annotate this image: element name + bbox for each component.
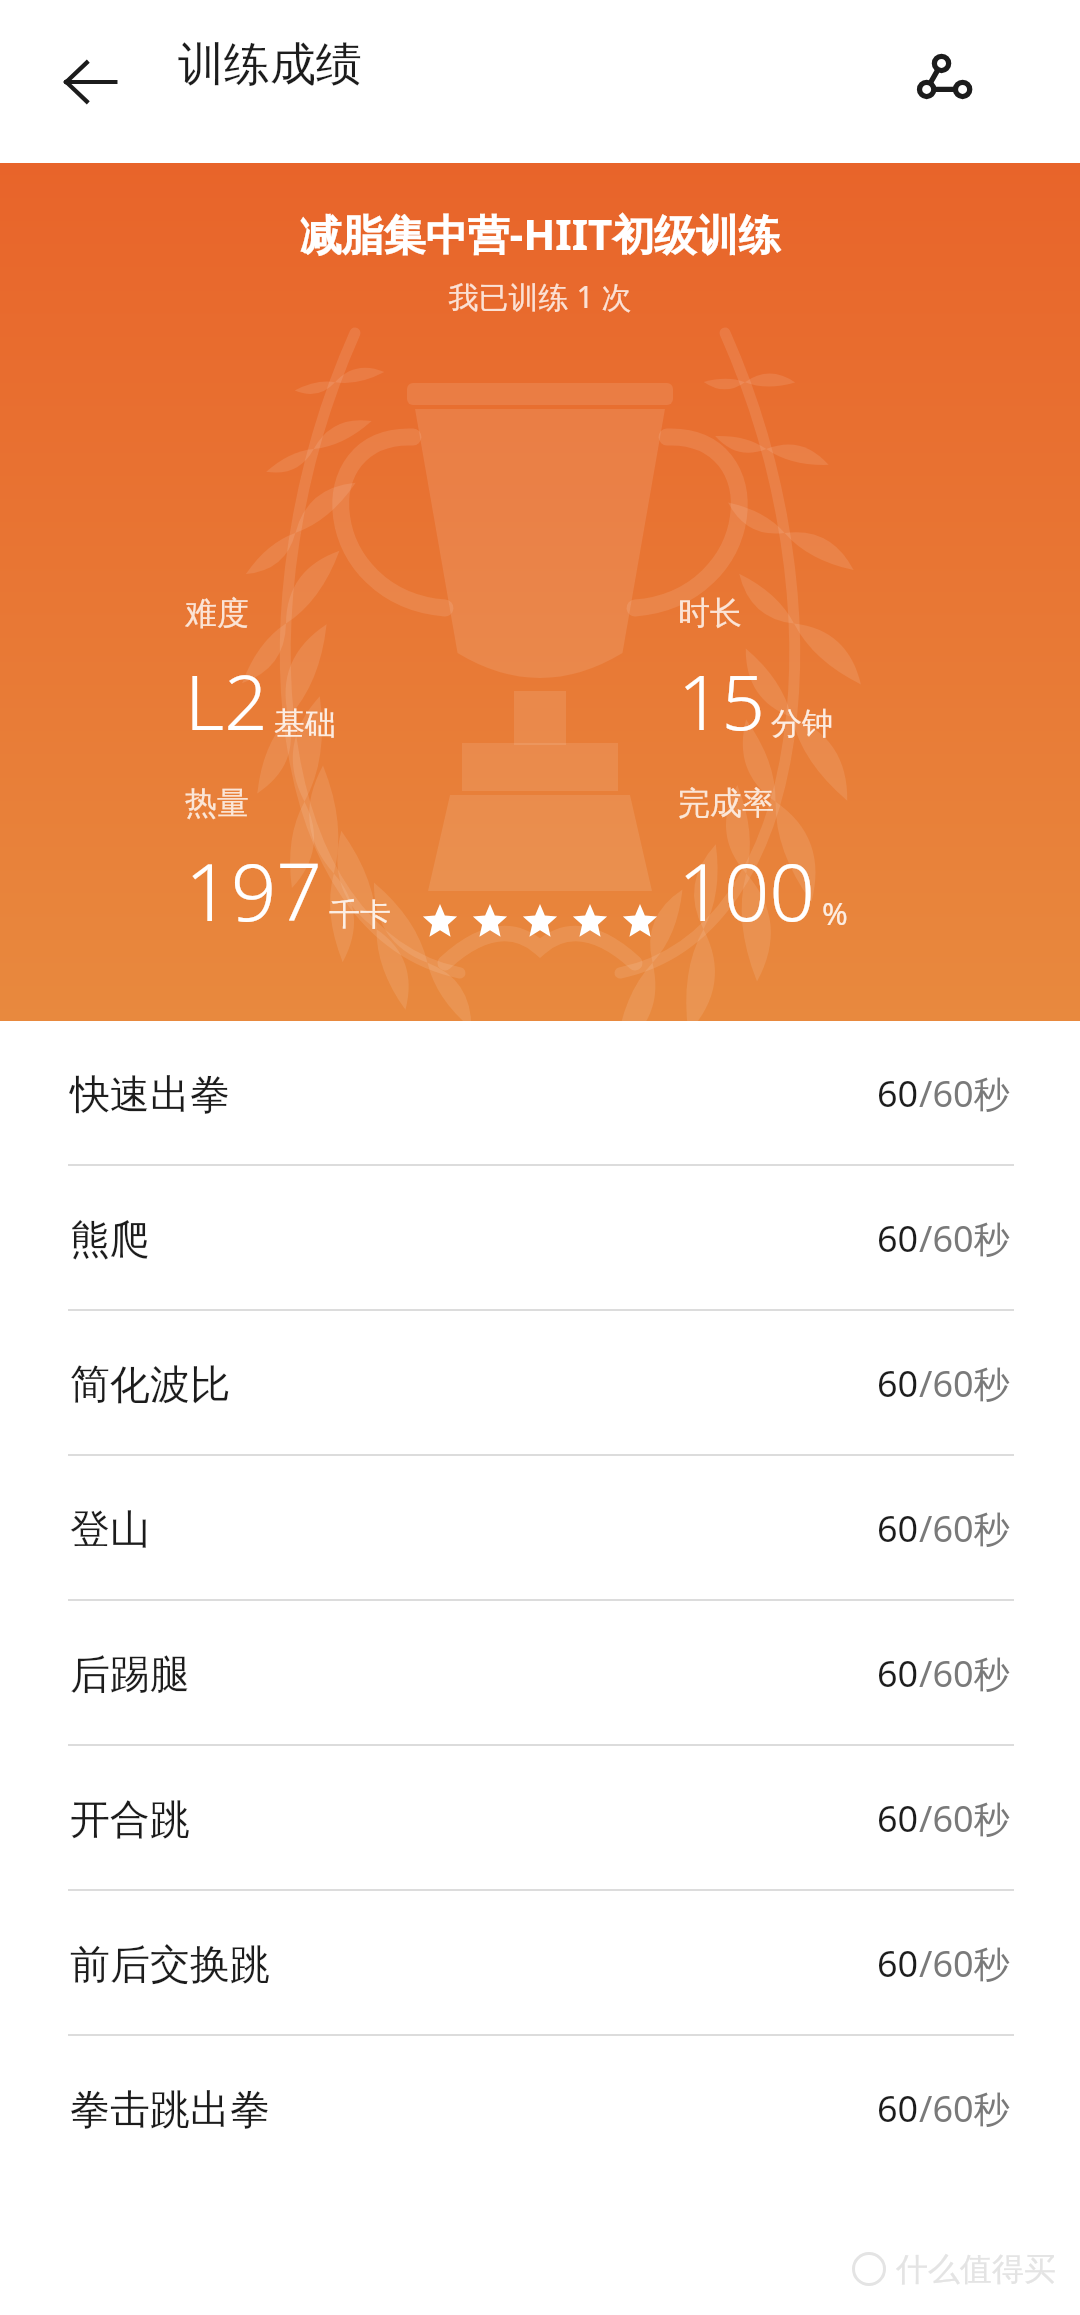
staticText: 拳击跳出拳 <box>70 2084 270 2134</box>
staticText: 快速出拳 <box>70 1069 230 1119</box>
staticText: 简化波比 <box>70 1359 230 1409</box>
staticText: /60秒 <box>919 1504 1010 1553</box>
button[interactable]: 开合跳 <box>0 1746 1080 1891</box>
staticText: 60 <box>877 1504 919 1553</box>
staticText: 60 <box>877 2084 919 2133</box>
button[interactable]: 前后交换跳 <box>0 1891 1080 2036</box>
staticText: /60秒 <box>919 1649 1010 1698</box>
staticText: /60秒 <box>919 1069 1010 1118</box>
staticText: 后踢腿 <box>70 1649 190 1699</box>
staticText: 15 <box>678 649 765 753</box>
staticText: 时长 <box>678 593 742 633</box>
staticText: 什么值得买 <box>896 2249 1056 2289</box>
staticText: 60 <box>877 1794 919 1843</box>
button[interactable]: 简化波比 <box>0 1311 1080 1456</box>
button[interactable]: 拳击跳出拳 <box>0 2036 1080 2181</box>
staticText: 难度 <box>185 593 249 633</box>
staticText: 减脂集中营-HIIT初级训练 <box>0 205 1080 262</box>
staticText: 训练成绩 <box>178 36 362 94</box>
button[interactable]: 快速出拳 <box>0 1021 1080 1166</box>
staticText: 基础 <box>274 704 336 743</box>
staticText: % <box>822 892 848 934</box>
staticText: 分钟 <box>771 704 833 743</box>
staticText: 登山 <box>70 1504 150 1554</box>
staticText: /60秒 <box>919 1939 1010 1988</box>
staticText: L2 <box>185 649 268 753</box>
staticText: 60 <box>877 1069 919 1118</box>
staticText: /60秒 <box>919 2084 1010 2133</box>
button[interactable]: Share <box>900 38 988 126</box>
staticText: /60秒 <box>919 1214 1010 1263</box>
staticText: /60秒 <box>919 1359 1010 1408</box>
staticText: 我已训练 1 次 <box>0 276 1080 317</box>
staticText: 60 <box>877 1649 919 1698</box>
staticText: 60 <box>877 1359 919 1408</box>
staticText: 60 <box>877 1214 919 1263</box>
staticText: 完成率 <box>678 783 774 823</box>
staticText: 197 <box>185 835 323 944</box>
staticText: 前后交换跳 <box>70 1939 270 1989</box>
button[interactable]: 后踢腿 <box>0 1601 1080 1746</box>
staticText: 60 <box>877 1939 919 1988</box>
staticText: 100 <box>678 835 816 944</box>
staticText: 千卡 <box>329 895 391 934</box>
staticText: 开合跳 <box>70 1794 190 1844</box>
button[interactable]: Back <box>48 40 132 124</box>
staticText: 熊爬 <box>70 1214 150 1264</box>
staticText: /60秒 <box>919 1794 1010 1843</box>
button[interactable]: 登山 <box>0 1456 1080 1601</box>
staticText: 热量 <box>185 783 249 823</box>
button[interactable]: 熊爬 <box>0 1166 1080 1311</box>
